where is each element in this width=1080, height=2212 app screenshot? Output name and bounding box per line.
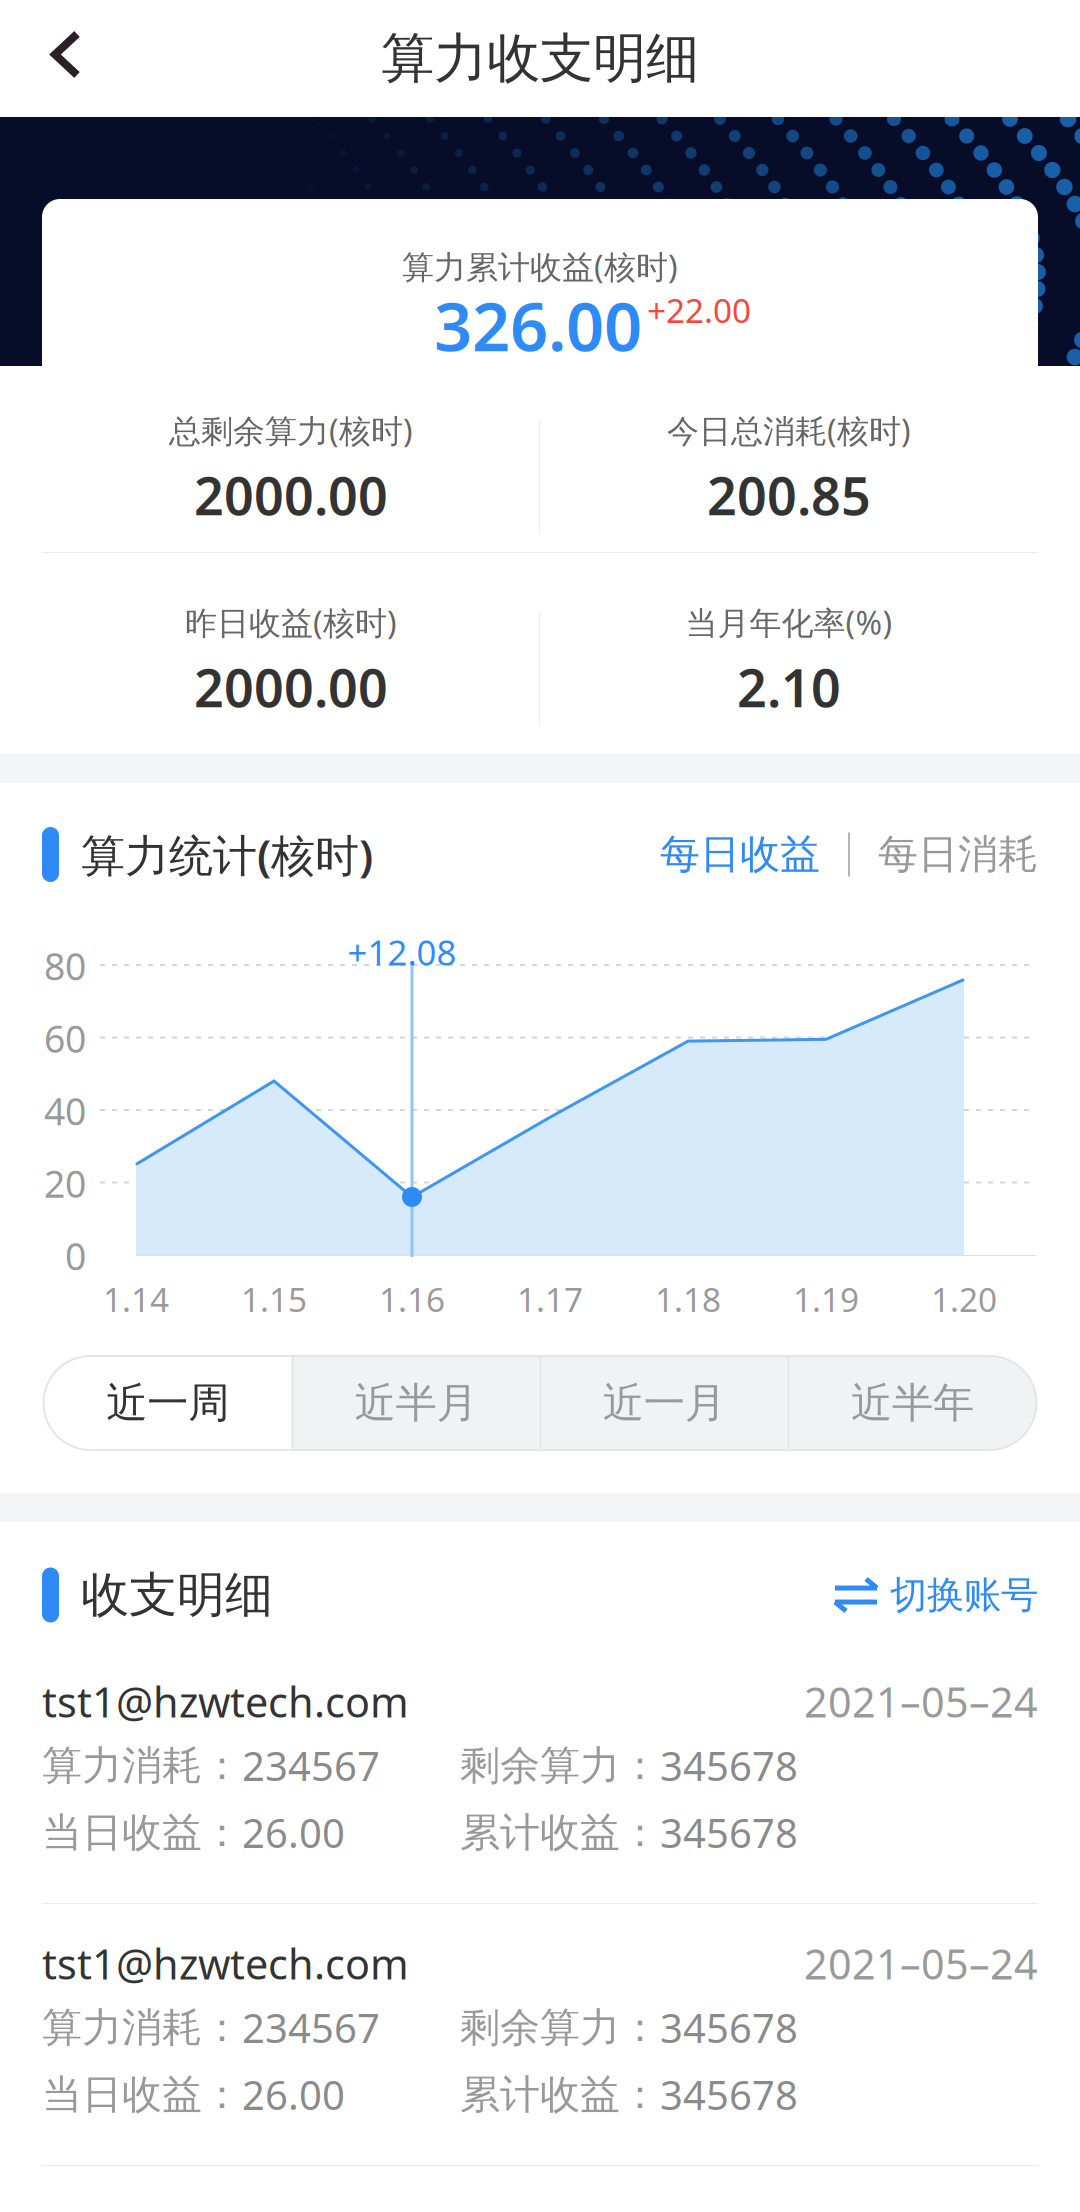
staticText: 0: [65, 1231, 86, 1281]
staticText: 2021–05–24: [804, 1936, 1038, 1991]
staticText: 20: [44, 1158, 86, 1208]
staticText: 1.19: [793, 1277, 859, 1321]
staticText: tst1@hzwtech.com: [42, 1936, 409, 1991]
staticText: 26.00: [242, 2068, 345, 2121]
staticText: 昨日收益(核时): [185, 601, 397, 643]
staticText: 80: [44, 941, 86, 991]
button[interactable]: 每日收益: [660, 830, 820, 879]
button[interactable]: 近半年: [788, 1356, 1036, 1450]
staticText: 今日总消耗(核时): [667, 409, 911, 451]
staticText: 60: [44, 1013, 86, 1063]
button[interactable]: 近半月: [292, 1356, 540, 1450]
staticText: 当日收益：: [42, 2070, 242, 2119]
staticText: 累计收益：: [460, 2070, 660, 2119]
staticText: 剩余算力：: [460, 1741, 660, 1790]
staticText: 345678: [660, 1806, 798, 1859]
staticText: 1.15: [241, 1277, 307, 1321]
staticText: 40: [44, 1086, 86, 1136]
staticText: 总剩余算力(核时): [169, 409, 413, 451]
staticText: 当日收益：: [42, 1808, 242, 1857]
staticText: 算力收支明细: [381, 26, 699, 91]
staticText: 1.14: [103, 1277, 169, 1321]
staticText: 近半年: [851, 1378, 974, 1428]
staticText: 345678: [660, 1739, 798, 1792]
staticText: 算力消耗：: [42, 2003, 242, 2052]
button[interactable]: 每日消耗: [878, 830, 1038, 879]
staticText: 1.17: [517, 1277, 583, 1321]
button[interactable]: 近一月: [540, 1356, 788, 1450]
staticText: 每日收益: [660, 830, 820, 879]
staticText: 当月年化率(%): [685, 601, 892, 643]
staticText: 算力统计(核时): [81, 825, 373, 884]
staticText: 1.18: [655, 1277, 721, 1321]
staticText: 2000.00: [194, 460, 388, 530]
staticText: +12.08: [347, 929, 456, 975]
staticText: 2021–05–24: [804, 1674, 1038, 1729]
button[interactable]: 近一周: [43, 1356, 292, 1450]
staticText: 200.85: [707, 460, 871, 530]
staticText: 326.00: [434, 281, 642, 369]
staticText: 26.00: [242, 1806, 345, 1859]
staticText: 234567: [242, 2001, 380, 2054]
staticText: 算力消耗：: [42, 1741, 242, 1790]
staticText: +22.00: [647, 288, 751, 332]
staticText: 2000.00: [194, 652, 388, 722]
staticText: tst1@hzwtech.com: [42, 1674, 409, 1729]
staticText: 每日消耗: [878, 830, 1038, 879]
staticText: 剩余算力：: [460, 2003, 660, 2052]
staticText: 345678: [660, 2001, 798, 2054]
staticText: 2.10: [737, 652, 841, 722]
button[interactable]: Back: [0, 0, 128, 117]
staticText: 1.20: [931, 1277, 997, 1321]
staticText: 234567: [242, 1739, 380, 1792]
staticText: 收支明细: [81, 1565, 273, 1624]
staticText: 切换账号: [890, 1572, 1038, 1618]
staticText: 近一月: [603, 1378, 726, 1428]
button[interactable]: 切换账号: [835, 1572, 1038, 1618]
staticText: 1.16: [379, 1277, 445, 1321]
staticText: 近半月: [354, 1378, 477, 1428]
staticText: 345678: [660, 2068, 798, 2121]
staticText: 近一周: [106, 1378, 229, 1428]
staticText: 算力累计收益(核时): [402, 245, 678, 287]
staticText: 累计收益：: [460, 1808, 660, 1857]
